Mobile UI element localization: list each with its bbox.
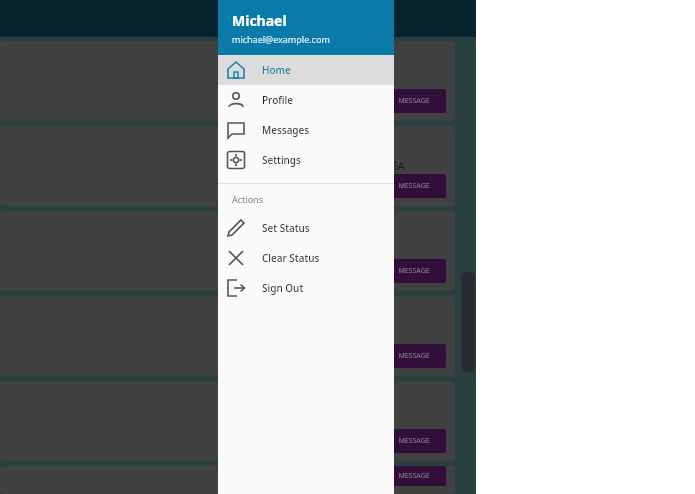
button[interactable]: MESSAGE [0, 466, 455, 494]
staticText: Settings [262, 153, 301, 167]
staticText: Michael [232, 11, 287, 30]
staticText: Set Status [262, 221, 310, 235]
button[interactable]: , USA [0, 126, 455, 206]
staticText: Sign Out [262, 281, 304, 295]
staticText: Clear Status [262, 251, 320, 265]
staticText: MESSAGE [398, 96, 430, 106]
button[interactable]: MESSAGE [382, 89, 446, 113]
button[interactable]: MESSAGE [382, 174, 446, 198]
button[interactable]: MESSAGE [0, 296, 455, 376]
button[interactable]: Home [218, 55, 394, 85]
staticText: Actions [232, 193, 263, 205]
button[interactable]: Set Status [218, 213, 394, 243]
staticText: , USA [380, 159, 405, 173]
button[interactable]: MESSAGE [0, 381, 455, 461]
button[interactable]: MESSAGE [0, 41, 455, 121]
button[interactable]: Clear Status [218, 243, 394, 273]
button[interactable]: Settings [218, 145, 394, 175]
button[interactable]: MESSAGE [0, 211, 455, 291]
staticText: Messages [262, 123, 310, 137]
button[interactable]: Michael [218, 0, 394, 55]
staticText: MESSAGE [398, 181, 430, 191]
button[interactable]: MESSAGE [382, 429, 446, 453]
staticText: MESSAGE [398, 436, 430, 446]
button[interactable]: MESSAGE [382, 466, 446, 486]
button[interactable]: MESSAGE [382, 344, 446, 368]
button[interactable]: Messages [218, 115, 394, 145]
staticText: MESSAGE [398, 351, 430, 361]
button[interactable]: MESSAGE [382, 259, 446, 283]
staticText: MESSAGE [398, 471, 430, 481]
staticText: Home [262, 63, 291, 77]
staticText: michael@example.com [232, 33, 330, 45]
button[interactable]: Profile [218, 85, 394, 115]
staticText: MESSAGE [398, 266, 430, 276]
staticText: Profile [262, 93, 293, 107]
button[interactable]: Sign Out [218, 273, 394, 303]
